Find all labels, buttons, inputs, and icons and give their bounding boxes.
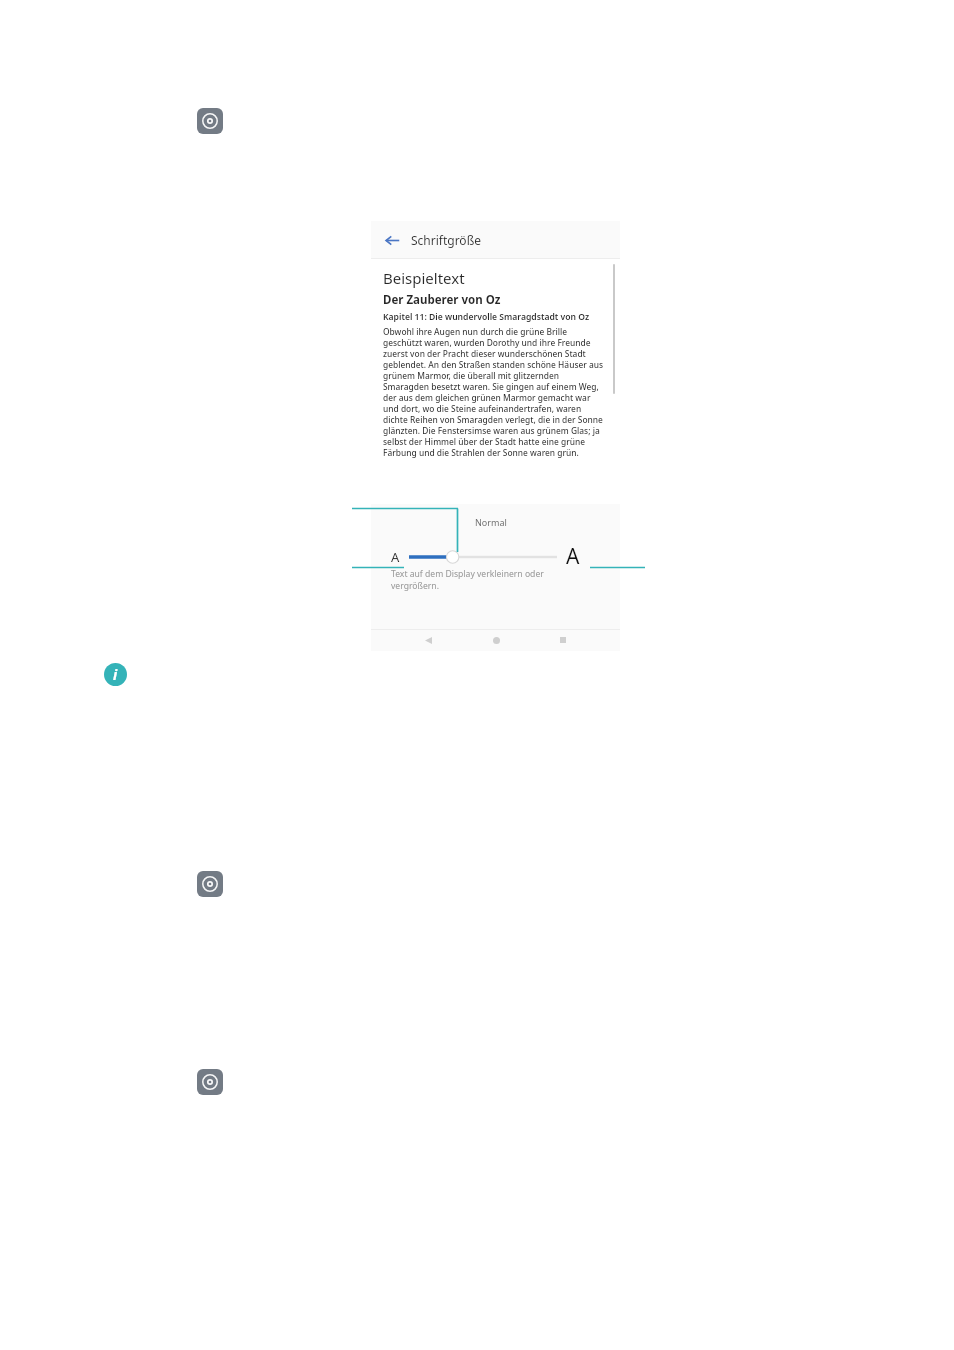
button[interactable]: Step marker: [197, 108, 223, 134]
button[interactable]: Back: [381, 229, 403, 251]
button[interactable]: Step marker: [197, 871, 223, 897]
staticText: A: [566, 542, 580, 571]
button[interactable]: Font size slider: [409, 546, 557, 568]
button[interactable]: Information: [104, 663, 127, 686]
button[interactable]: Recent apps: [553, 630, 573, 650]
staticText: Der Zauberer von Oz: [383, 292, 501, 308]
staticText: i: [113, 665, 118, 684]
staticText: Schriftgröße: [411, 232, 481, 248]
staticText: Normal: [475, 516, 507, 528]
staticText: Text auf dem Display verkleinern oder ve…: [391, 568, 581, 591]
button[interactable]: Home: [486, 630, 506, 650]
staticText: Kapitel 11: Die wundervolle Smaragdstadt…: [383, 311, 590, 323]
staticText: Obwohl ihre Augen nun durch die grüne Br…: [383, 326, 606, 458]
staticText: A: [391, 548, 400, 566]
button[interactable]: Back: [418, 630, 438, 650]
button[interactable]: Step marker: [197, 1069, 223, 1095]
staticText: Beispieltext: [383, 268, 465, 288]
